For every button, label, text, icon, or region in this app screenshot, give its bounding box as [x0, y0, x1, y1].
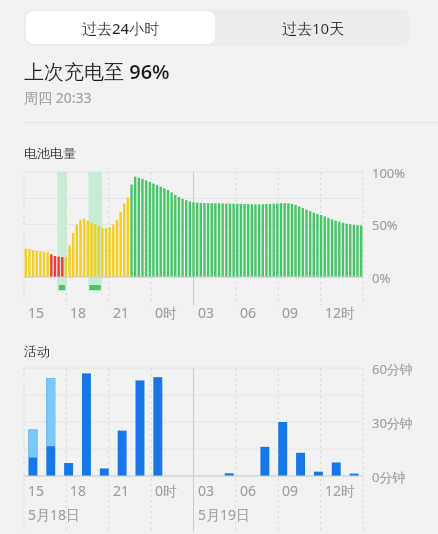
staticText: 过去24小时 — [82, 18, 160, 38]
staticText: 06 — [240, 303, 257, 322]
staticText: 30分钟 — [372, 414, 413, 432]
staticText: 0% — [372, 269, 391, 287]
staticText: 5月19日 — [198, 505, 251, 524]
staticText: 21 — [113, 481, 130, 500]
button[interactable]: 过去10天 — [217, 9, 410, 46]
staticText: 15 — [28, 303, 45, 322]
staticText: 50% — [372, 216, 398, 234]
staticText: 电池电量 — [24, 145, 76, 161]
staticText: 60分钟 — [372, 360, 413, 378]
staticText: 100% — [372, 164, 406, 182]
staticText: 18 — [70, 481, 87, 500]
button[interactable]: 过去24小时 — [26, 11, 215, 44]
staticText: 03 — [198, 303, 215, 322]
staticText: 过去10天 — [282, 18, 345, 38]
staticText: 活动 — [24, 343, 50, 359]
staticText: 15 — [28, 481, 45, 500]
staticText: 5月18日 — [28, 505, 81, 524]
staticText: 0时 — [155, 303, 178, 322]
staticText: 周四 20:33 — [24, 88, 92, 107]
staticText: 0分钟 — [372, 468, 406, 486]
staticText: 上次充电至 96% — [24, 58, 170, 85]
staticText: 06 — [240, 481, 257, 500]
staticText: 09 — [282, 481, 299, 500]
staticText: 12时 — [325, 303, 356, 322]
staticText: 18 — [70, 303, 87, 322]
staticText: 21 — [113, 303, 130, 322]
staticText: 03 — [198, 481, 215, 500]
staticText: 0时 — [155, 481, 178, 500]
staticText: 12时 — [325, 481, 356, 500]
staticText: 09 — [282, 303, 299, 322]
